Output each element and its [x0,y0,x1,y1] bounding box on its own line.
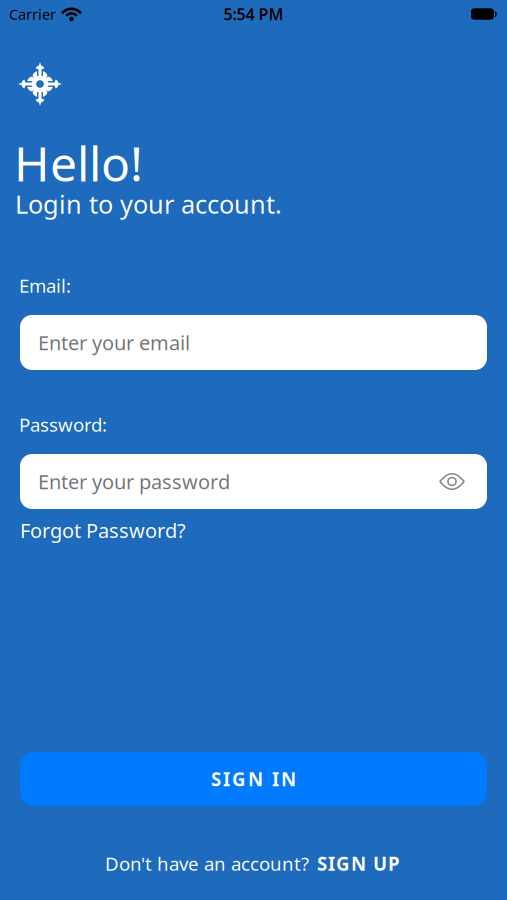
staticText: Email: [19,273,71,298]
staticText: SIGN IN [211,767,296,791]
staticText: Password: [19,412,107,437]
staticText: Enter your password [38,468,230,495]
staticText: Don't have an account? [105,851,309,876]
staticText: Forgot Password? [20,517,186,544]
staticText: Enter your email [38,329,190,356]
button[interactable]: Show password [439,472,487,490]
button[interactable]: Password text field [0,0,487,509]
staticText: Hello! [14,131,143,195]
staticText: Carrier [9,4,56,24]
staticText: Login to your account. [15,187,282,221]
button[interactable]: Don't have an account? [0,0,507,876]
staticText: 5:54 PM [223,3,283,25]
staticText: SIGN UP [317,851,400,876]
button[interactable]: SIGN IN [0,0,487,806]
button[interactable]: Forgot Password? [0,0,186,544]
button[interactable]: Email text field [0,0,487,370]
